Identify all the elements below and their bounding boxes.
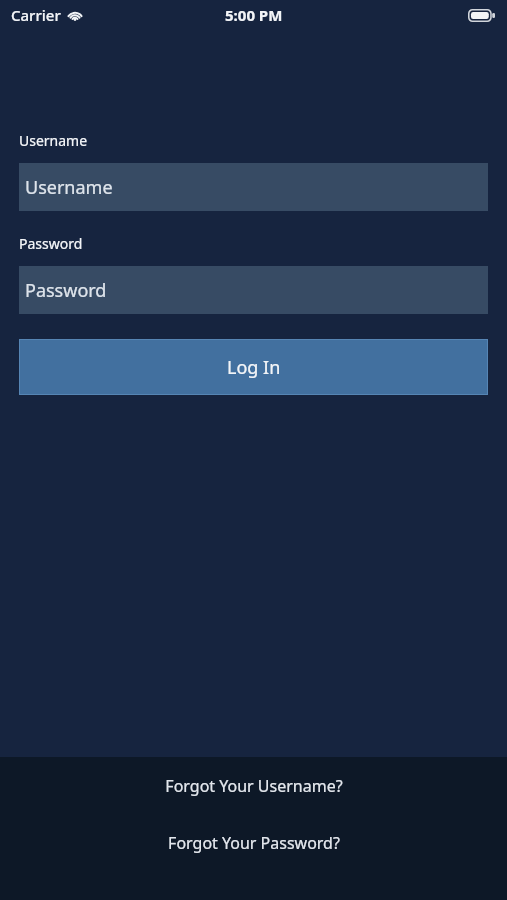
staticText: Log In <box>227 355 281 380</box>
staticText: 5:00 PM <box>225 5 283 25</box>
other: Battery full <box>468 9 495 22</box>
button[interactable]: Username <box>19 163 488 211</box>
button[interactable]: Forgot Your Username? <box>0 757 507 814</box>
staticText: Carrier <box>11 5 61 25</box>
button[interactable]: Password <box>19 266 488 314</box>
button[interactable]: Forgot Your Password? <box>0 814 507 871</box>
staticText: Forgot Your Password? <box>168 832 340 854</box>
staticText: Username <box>25 175 113 200</box>
staticText: Password <box>19 234 83 253</box>
other: Wi-Fi signal <box>67 9 83 21</box>
staticText: Username <box>19 131 88 150</box>
staticText: Password <box>25 278 107 303</box>
staticText: Forgot Your Username? <box>165 775 343 797</box>
button[interactable]: Log In <box>19 339 488 395</box>
